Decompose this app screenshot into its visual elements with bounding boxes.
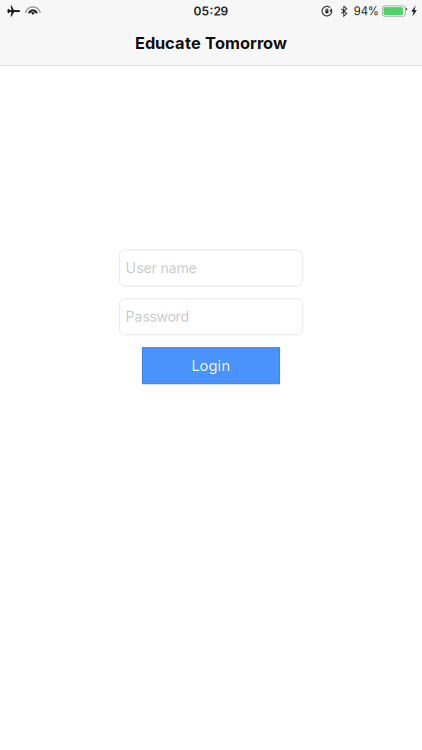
button[interactable]: User name	[119, 250, 302, 286]
button[interactable]: Login	[142, 348, 279, 384]
staticText: Login	[191, 357, 230, 374]
button[interactable]: Password	[119, 299, 302, 335]
staticText: Password	[126, 308, 190, 325]
staticText: Educate Tomorrow	[135, 33, 287, 53]
staticText: 05:29	[193, 4, 228, 18]
staticText: 94%	[354, 4, 379, 18]
staticText: User name	[126, 260, 197, 277]
